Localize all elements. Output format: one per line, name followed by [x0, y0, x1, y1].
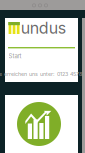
staticText: Start — [8, 52, 21, 60]
staticText: Sie erreichen uns unter: 0123 45789 0 — [0, 71, 85, 77]
staticText: undus — [21, 18, 66, 38]
